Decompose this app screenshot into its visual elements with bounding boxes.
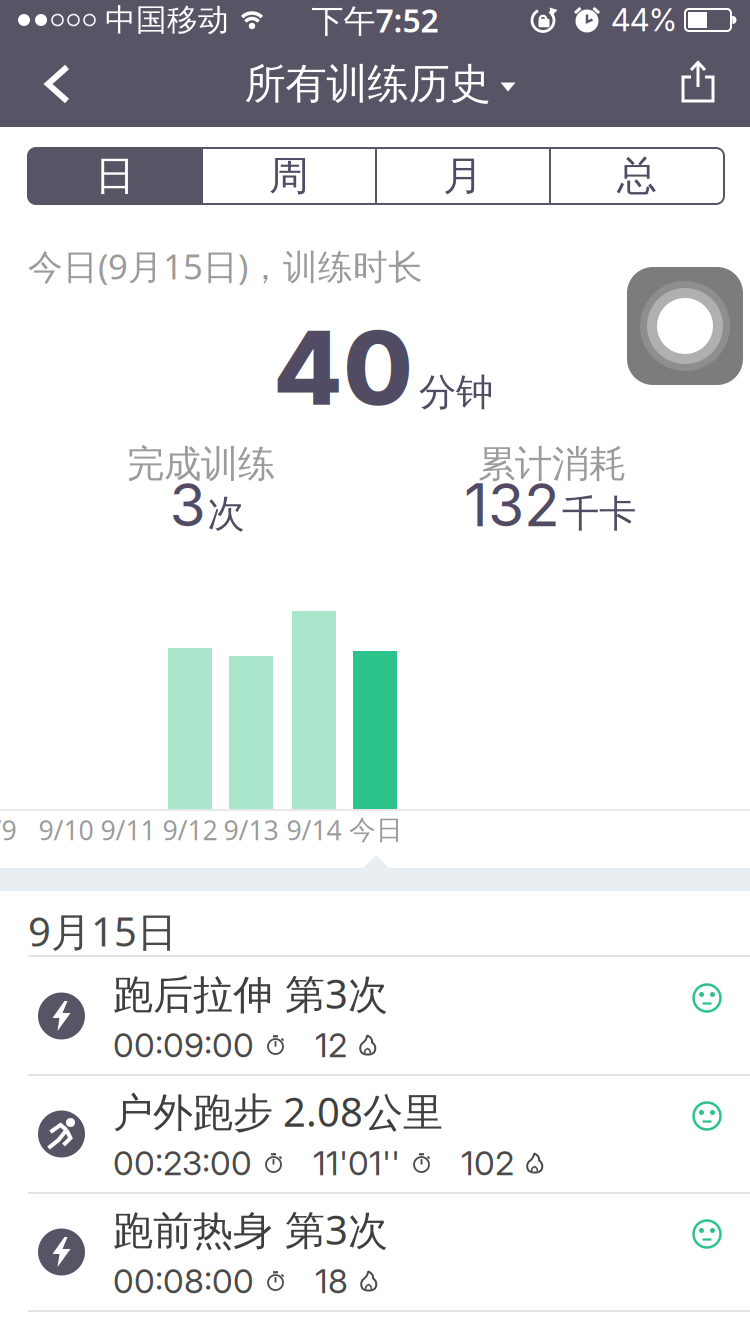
staticText: 千卡	[562, 491, 636, 537]
staticText: 9月15日	[28, 904, 177, 957]
staticText: 下午7:52	[311, 0, 438, 41]
staticText: 00:08:00	[113, 1261, 254, 1301]
staticText: 分钟	[419, 369, 493, 415]
button[interactable]	[17, 45, 71, 123]
staticText: 所有训练历史	[244, 59, 490, 109]
button[interactable]: 所有训练历史	[244, 59, 515, 109]
button[interactable]: 跑前热身 第3次	[0, 1193, 750, 1311]
staticText: 18	[315, 1261, 348, 1301]
button[interactable]	[681, 61, 715, 103]
button[interactable]: 户外跑步 2.08公里	[0, 1075, 750, 1193]
button[interactable]	[627, 267, 743, 385]
button[interactable]: 日	[28, 148, 202, 204]
staticText: 11'01''	[313, 1143, 400, 1183]
staticText: 累计消耗	[478, 441, 626, 487]
staticText: 日	[95, 151, 135, 200]
button[interactable]: 跑后拉伸 第3次	[0, 957, 750, 1075]
staticText: 9/13	[223, 812, 278, 848]
staticText: 12	[315, 1025, 347, 1065]
staticText: 中国移动	[105, 1, 229, 39]
staticText: /9	[0, 812, 16, 848]
staticText: 132	[464, 469, 560, 540]
staticText: 9/11	[100, 812, 155, 848]
staticText: 00:09:00	[113, 1025, 254, 1065]
staticText: 00:23:00	[113, 1143, 252, 1183]
staticText: 102	[461, 1143, 514, 1183]
staticText: 月	[443, 151, 483, 200]
staticText: 9/14	[286, 812, 341, 848]
staticText: 9/10	[38, 812, 93, 848]
button[interactable]: 总	[550, 148, 724, 204]
button[interactable]: 周	[202, 148, 376, 204]
staticText: 次	[207, 491, 244, 537]
staticText: 周	[269, 151, 309, 200]
staticText: 完成训练	[127, 441, 275, 487]
staticText: 今日	[349, 814, 403, 846]
staticText: 跑前热身 第3次	[113, 1203, 388, 1256]
staticText: 44%	[611, 1, 677, 38]
staticText: 总	[617, 151, 657, 200]
staticText: 9/12	[162, 812, 217, 848]
button[interactable]: 月	[376, 148, 550, 204]
staticText: 40	[273, 307, 413, 429]
staticText: 跑后拉伸 第3次	[113, 967, 388, 1020]
staticText: 户外跑步 2.08公里	[113, 1085, 443, 1138]
staticText: 3	[169, 469, 205, 540]
staticText: 今日(9月15日)，训练时长	[28, 243, 423, 289]
